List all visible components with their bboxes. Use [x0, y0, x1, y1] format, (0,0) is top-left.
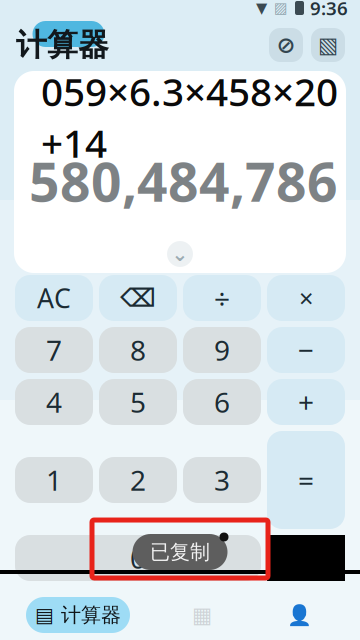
- staticText: =: [298, 461, 314, 499]
- staticText: ▧: [318, 33, 338, 57]
- button[interactable]: 5: [99, 379, 177, 425]
- staticText: 3: [214, 461, 230, 499]
- staticText: ▨: [274, 0, 288, 16]
- button[interactable]: ⌫: [99, 275, 177, 321]
- button[interactable]: 更多工具: [177, 597, 227, 633]
- staticText: ⊘: [276, 32, 295, 58]
- button[interactable]: 4: [15, 379, 93, 425]
- staticText: 9:36: [310, 0, 348, 20]
- button[interactable]: 6: [183, 379, 261, 425]
- staticText: +: [298, 383, 314, 421]
- button[interactable]: 我的: [274, 597, 324, 633]
- staticText: 👤: [286, 604, 311, 626]
- button[interactable]: ÷: [183, 275, 261, 321]
- button[interactable]: AC: [15, 275, 93, 321]
- button[interactable]: ×: [267, 275, 345, 321]
- staticText: 0: [130, 539, 146, 577]
- staticText: 5: [130, 383, 146, 421]
- staticText: ÷: [214, 279, 230, 317]
- button[interactable]: 历史记录: [311, 28, 345, 62]
- button[interactable]: 静音: [269, 28, 303, 62]
- button[interactable]: +: [267, 379, 345, 425]
- staticText: 580,484,786: [29, 146, 338, 216]
- staticText: ▦: [192, 603, 212, 627]
- button[interactable]: ▤: [26, 597, 130, 633]
- staticText: 4: [46, 383, 62, 421]
- staticText: 6: [214, 383, 230, 421]
- button[interactable]: 9: [183, 327, 261, 373]
- staticText: 8: [130, 331, 146, 369]
- staticText: 9: [214, 331, 230, 369]
- staticText: −: [298, 331, 314, 369]
- staticText: 7: [46, 331, 62, 369]
- button[interactable]: 0: [15, 535, 261, 581]
- staticText: 1: [46, 461, 62, 499]
- staticText: 计算器: [16, 26, 109, 64]
- staticText: 已复制: [150, 540, 210, 564]
- staticText: 059×6.3×458×20+14: [41, 66, 338, 168]
- staticText: 计算器: [61, 603, 121, 627]
- staticText: ▼: [256, 0, 267, 16]
- button[interactable]: =: [267, 431, 345, 529]
- staticText: ×: [299, 281, 313, 315]
- button[interactable]: 8: [99, 327, 177, 373]
- button[interactable]: 7: [15, 327, 93, 373]
- button[interactable]: 3: [183, 457, 261, 503]
- staticText: ⌫: [120, 284, 156, 312]
- button[interactable]: 2: [99, 457, 177, 503]
- staticText: ⌄: [171, 243, 188, 265]
- button[interactable]: −: [267, 327, 345, 373]
- button[interactable]: 1: [15, 457, 93, 503]
- button[interactable]: 展开: [167, 241, 193, 267]
- staticText: AC: [37, 280, 71, 316]
- staticText: 2: [130, 461, 146, 499]
- staticText: ▤: [35, 604, 54, 626]
